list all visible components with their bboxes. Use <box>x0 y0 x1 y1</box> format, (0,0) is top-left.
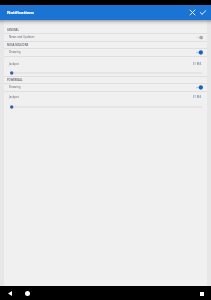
staticText: $1 Mill. <box>193 62 203 66</box>
button[interactable]: Recents <box>195 287 208 300</box>
button[interactable]: Save <box>195 5 210 20</box>
button[interactable]: Home <box>21 287 34 300</box>
button[interactable]: Jackpot <box>4 56 207 77</box>
staticText: Jackpot <box>9 62 193 66</box>
staticText: POWERBALL <box>7 78 23 82</box>
button[interactable]: Jackpot <box>4 89 207 111</box>
staticText: Notifications <box>7 10 35 16</box>
staticText: News and Updates <box>9 35 196 39</box>
button[interactable]: Back <box>3 287 16 300</box>
button[interactable]: Discard <box>185 5 200 20</box>
button[interactable]: News and Updates <box>4 33 207 41</box>
staticText: Drawing <box>9 50 196 54</box>
staticText: GENERAL <box>7 28 19 32</box>
staticText: Drawing <box>9 85 196 89</box>
staticText: MEGA MILLIONS <box>7 43 29 47</box>
button[interactable]: Drawing <box>4 48 207 56</box>
staticText: Jackpot <box>9 95 193 99</box>
button[interactable]: Drawing <box>4 83 207 91</box>
staticText: $1 Mill. <box>193 95 203 99</box>
